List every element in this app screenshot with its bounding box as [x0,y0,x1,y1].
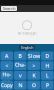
staticText: No history yet [17,32,36,35]
staticText: Slow [28,52,40,59]
button[interactable]: Home [0,71,13,80]
staticText: D [45,52,49,59]
staticText: H [45,62,49,69]
button[interactable]: Slow [27,51,40,60]
button[interactable]: B [14,51,26,60]
staticText: English [21,45,33,50]
button[interactable]: O [27,81,40,90]
button[interactable]: Change [14,61,26,70]
staticText: O [32,82,36,89]
staticText: Home [2,71,11,80]
button[interactable]: English [19,45,35,50]
button[interactable]: Copy [0,81,13,90]
staticText: L [46,72,49,79]
staticText: N [18,82,22,89]
staticText: B [18,52,22,59]
button[interactable]: P [41,81,53,90]
staticText: v [19,72,22,79]
button[interactable]: A [0,51,13,60]
button[interactable]: > [27,61,40,70]
staticText: > [32,62,35,69]
staticText: A [5,52,9,59]
button[interactable]: K [27,71,40,80]
button[interactable]: v [14,71,26,80]
button[interactable]: N [14,81,26,90]
button[interactable]: L [41,71,53,80]
button[interactable]: H [41,61,53,70]
button[interactable]: < [0,61,13,70]
staticText: < [5,62,8,69]
button[interactable]: D [41,51,53,60]
staticText: Copy [1,82,13,89]
staticText: P [46,82,49,89]
staticText: Change [15,61,26,70]
staticText: Search [3,6,15,11]
staticText: K [32,72,35,79]
